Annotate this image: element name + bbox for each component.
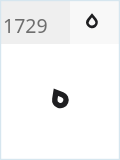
button[interactable]: Water drop logo [52,91,67,106]
staticText: 1729 [3,12,48,39]
button[interactable]: 1729 [0,0,70,44]
button[interactable]: Water drop [86,15,98,27]
